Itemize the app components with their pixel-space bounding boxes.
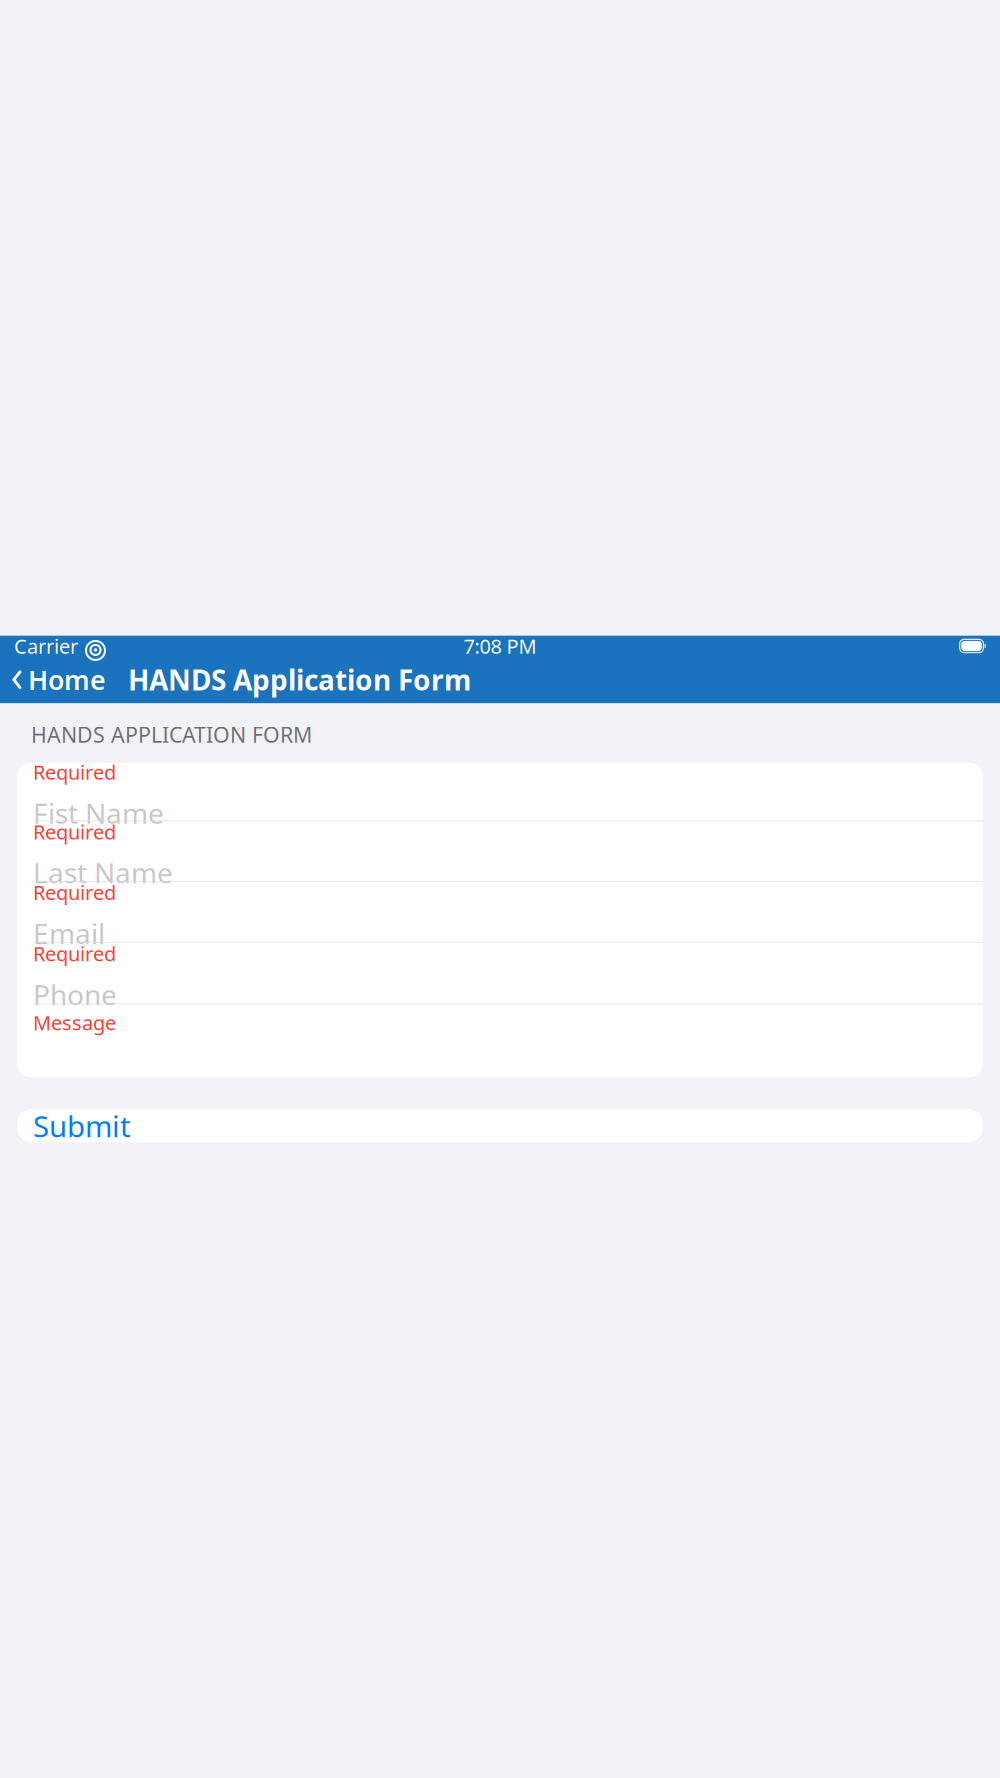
staticText: Required (33, 818, 116, 845)
staticText: Last Name (33, 854, 173, 891)
staticText: Carrier (14, 633, 78, 659)
staticText: HANDS APPLICATION FORM (31, 720, 312, 748)
staticText: Required (33, 940, 116, 967)
staticText: Required (33, 759, 116, 785)
staticText: Required (33, 879, 116, 906)
staticText: HANDS Application Form (128, 661, 471, 698)
staticText: Home (28, 662, 106, 697)
button[interactable]: Submit (17, 1109, 983, 1142)
staticText: Phone (33, 976, 117, 1013)
staticText: Email (33, 915, 105, 952)
button[interactable]: Home (0, 656, 114, 703)
staticText: 7:08 PM (463, 633, 536, 659)
staticText: Submit (33, 1106, 131, 1145)
staticText: Message (33, 1009, 116, 1036)
staticText: Fist Name (33, 794, 164, 831)
